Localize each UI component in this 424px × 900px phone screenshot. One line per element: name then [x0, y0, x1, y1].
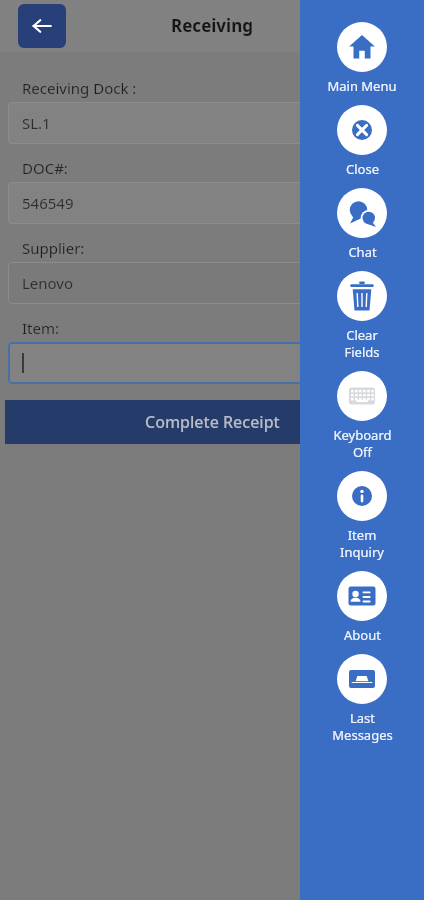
button[interactable]: Main Menu: [300, 22, 424, 105]
button[interactable]: [8, 342, 416, 384]
button[interactable]: Complete Receipt: [5, 400, 419, 444]
button[interactable]: Back: [18, 4, 66, 48]
button[interactable]: Chat: [300, 188, 424, 271]
staticText: Supplier:: [22, 238, 85, 258]
staticText: Last Messages: [332, 709, 393, 744]
staticText: Item:: [22, 318, 60, 338]
staticText: Clear Fields: [344, 326, 380, 361]
staticText: 546549: [22, 193, 74, 213]
staticText: Close: [346, 160, 379, 178]
button[interactable]: Last Messages: [300, 654, 424, 754]
staticText: Chat: [348, 243, 377, 261]
staticText: Item Inquiry: [340, 526, 384, 561]
button[interactable]: Keyboard Off: [300, 371, 424, 471]
button[interactable]: Item Inquiry: [300, 471, 424, 571]
button[interactable]: Close: [300, 105, 424, 188]
staticText: Lenovo: [22, 273, 74, 293]
staticText: Keyboard Off: [333, 426, 392, 461]
button[interactable]: About: [300, 571, 424, 654]
button[interactable]: SL.1: [8, 102, 416, 144]
staticText: Receiving Dock :: [22, 78, 137, 98]
staticText: Receiving: [0, 14, 424, 37]
staticText: DOC#:: [22, 158, 68, 178]
staticText: Main Menu: [327, 77, 397, 95]
button[interactable]: 546549: [8, 182, 416, 224]
button[interactable]: Lenovo: [8, 262, 416, 304]
staticText: SL.1: [22, 113, 51, 133]
staticText: Complete Receipt: [145, 411, 280, 433]
staticText: About: [344, 626, 381, 644]
button[interactable]: Clear Fields: [300, 271, 424, 371]
